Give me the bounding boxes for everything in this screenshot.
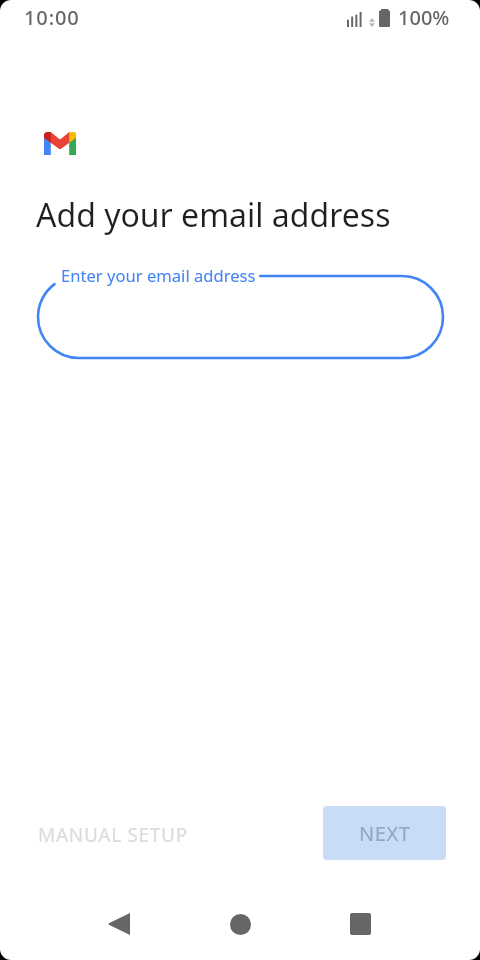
button[interactable]: Recent apps — [332, 896, 388, 952]
staticText: Add your email address — [36, 193, 391, 237]
button[interactable]: Enter your email address — [36, 274, 445, 360]
staticText: 10:00 — [24, 4, 80, 31]
button[interactable]: MANUAL SETUP — [24, 812, 202, 858]
button[interactable]: Back — [91, 896, 147, 952]
staticText: MANUAL SETUP — [38, 822, 188, 848]
button[interactable]: Home — [212, 896, 268, 952]
button[interactable]: NEXT — [323, 806, 446, 860]
staticText: NEXT — [359, 820, 411, 847]
staticText: 100% — [398, 4, 450, 31]
staticText: Enter your email address — [61, 264, 256, 287]
